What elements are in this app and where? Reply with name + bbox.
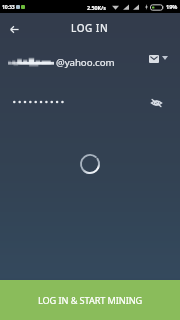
button[interactable]: Back [3, 18, 25, 40]
staticText: 10:33 [2, 3, 15, 10]
button[interactable]: Toggle password visibility [150, 98, 163, 108]
staticText: @yahoo.com [56, 56, 115, 69]
staticText: 2.50K/s [87, 4, 106, 11]
staticText: LOG IN & START MINING [38, 294, 143, 307]
button[interactable]: LOG IN & START MINING [0, 280, 180, 320]
staticText: 19% [166, 3, 178, 11]
button[interactable]: Show suggestions [161, 55, 169, 61]
staticText: LOG IN [71, 21, 109, 35]
button[interactable]: Email [148, 54, 159, 63]
